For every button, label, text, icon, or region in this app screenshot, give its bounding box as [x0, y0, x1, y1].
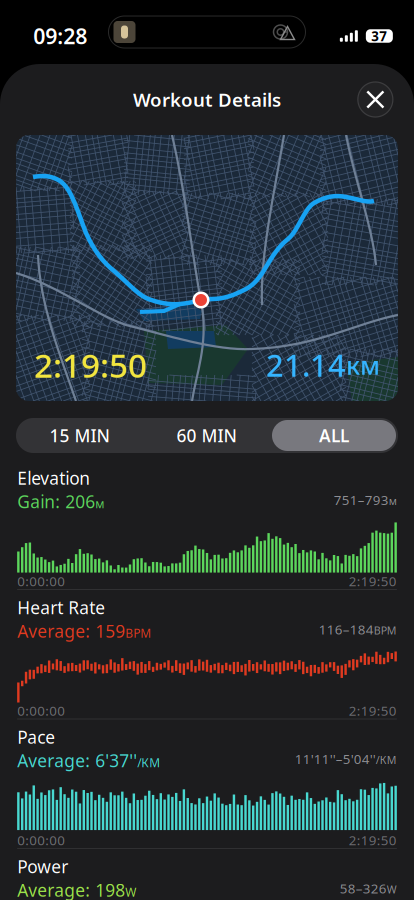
staticText: 11'11''–5'04''/КМ [295, 750, 397, 764]
button[interactable]: 15 MIN [16, 418, 143, 453]
staticText: 0:00:00 [17, 702, 65, 719]
staticText: 2:19:50 [349, 831, 397, 849]
staticText: 751–793м [334, 491, 397, 505]
staticText: Heart Rate [17, 596, 105, 619]
staticText: Pace [17, 725, 55, 748]
staticText: Average: 159BPM [17, 619, 151, 640]
staticText: Average: 198W [17, 878, 136, 899]
staticText: Power [17, 855, 68, 878]
button[interactable]: 60 MIN [143, 418, 270, 453]
staticText: 60 MIN [176, 424, 236, 447]
staticText: 0:00:00 [17, 831, 65, 849]
staticText: 116–184BPM [319, 620, 397, 634]
staticText: 2:19:50 [34, 343, 147, 387]
staticText: 2:19:50 [349, 702, 397, 719]
button[interactable]: Close [358, 82, 393, 117]
staticText: 09:28 [33, 22, 87, 50]
button[interactable]: ALL [270, 418, 398, 453]
staticText: 21.14 [266, 344, 346, 385]
staticText: 2:19:50 [349, 572, 397, 590]
staticText: 15 MIN [49, 424, 109, 447]
staticText: км [346, 348, 380, 382]
staticText: 58–326W [340, 879, 397, 893]
staticText: ALL [319, 424, 349, 447]
staticText: Average: 6'37''/КМ [17, 749, 160, 770]
staticText: 0:00:00 [17, 572, 65, 590]
staticText: Workout Details [133, 87, 281, 112]
staticText: 37 [371, 27, 387, 45]
staticText: Elevation [17, 466, 90, 489]
staticText: Gain: 206м [17, 490, 104, 511]
